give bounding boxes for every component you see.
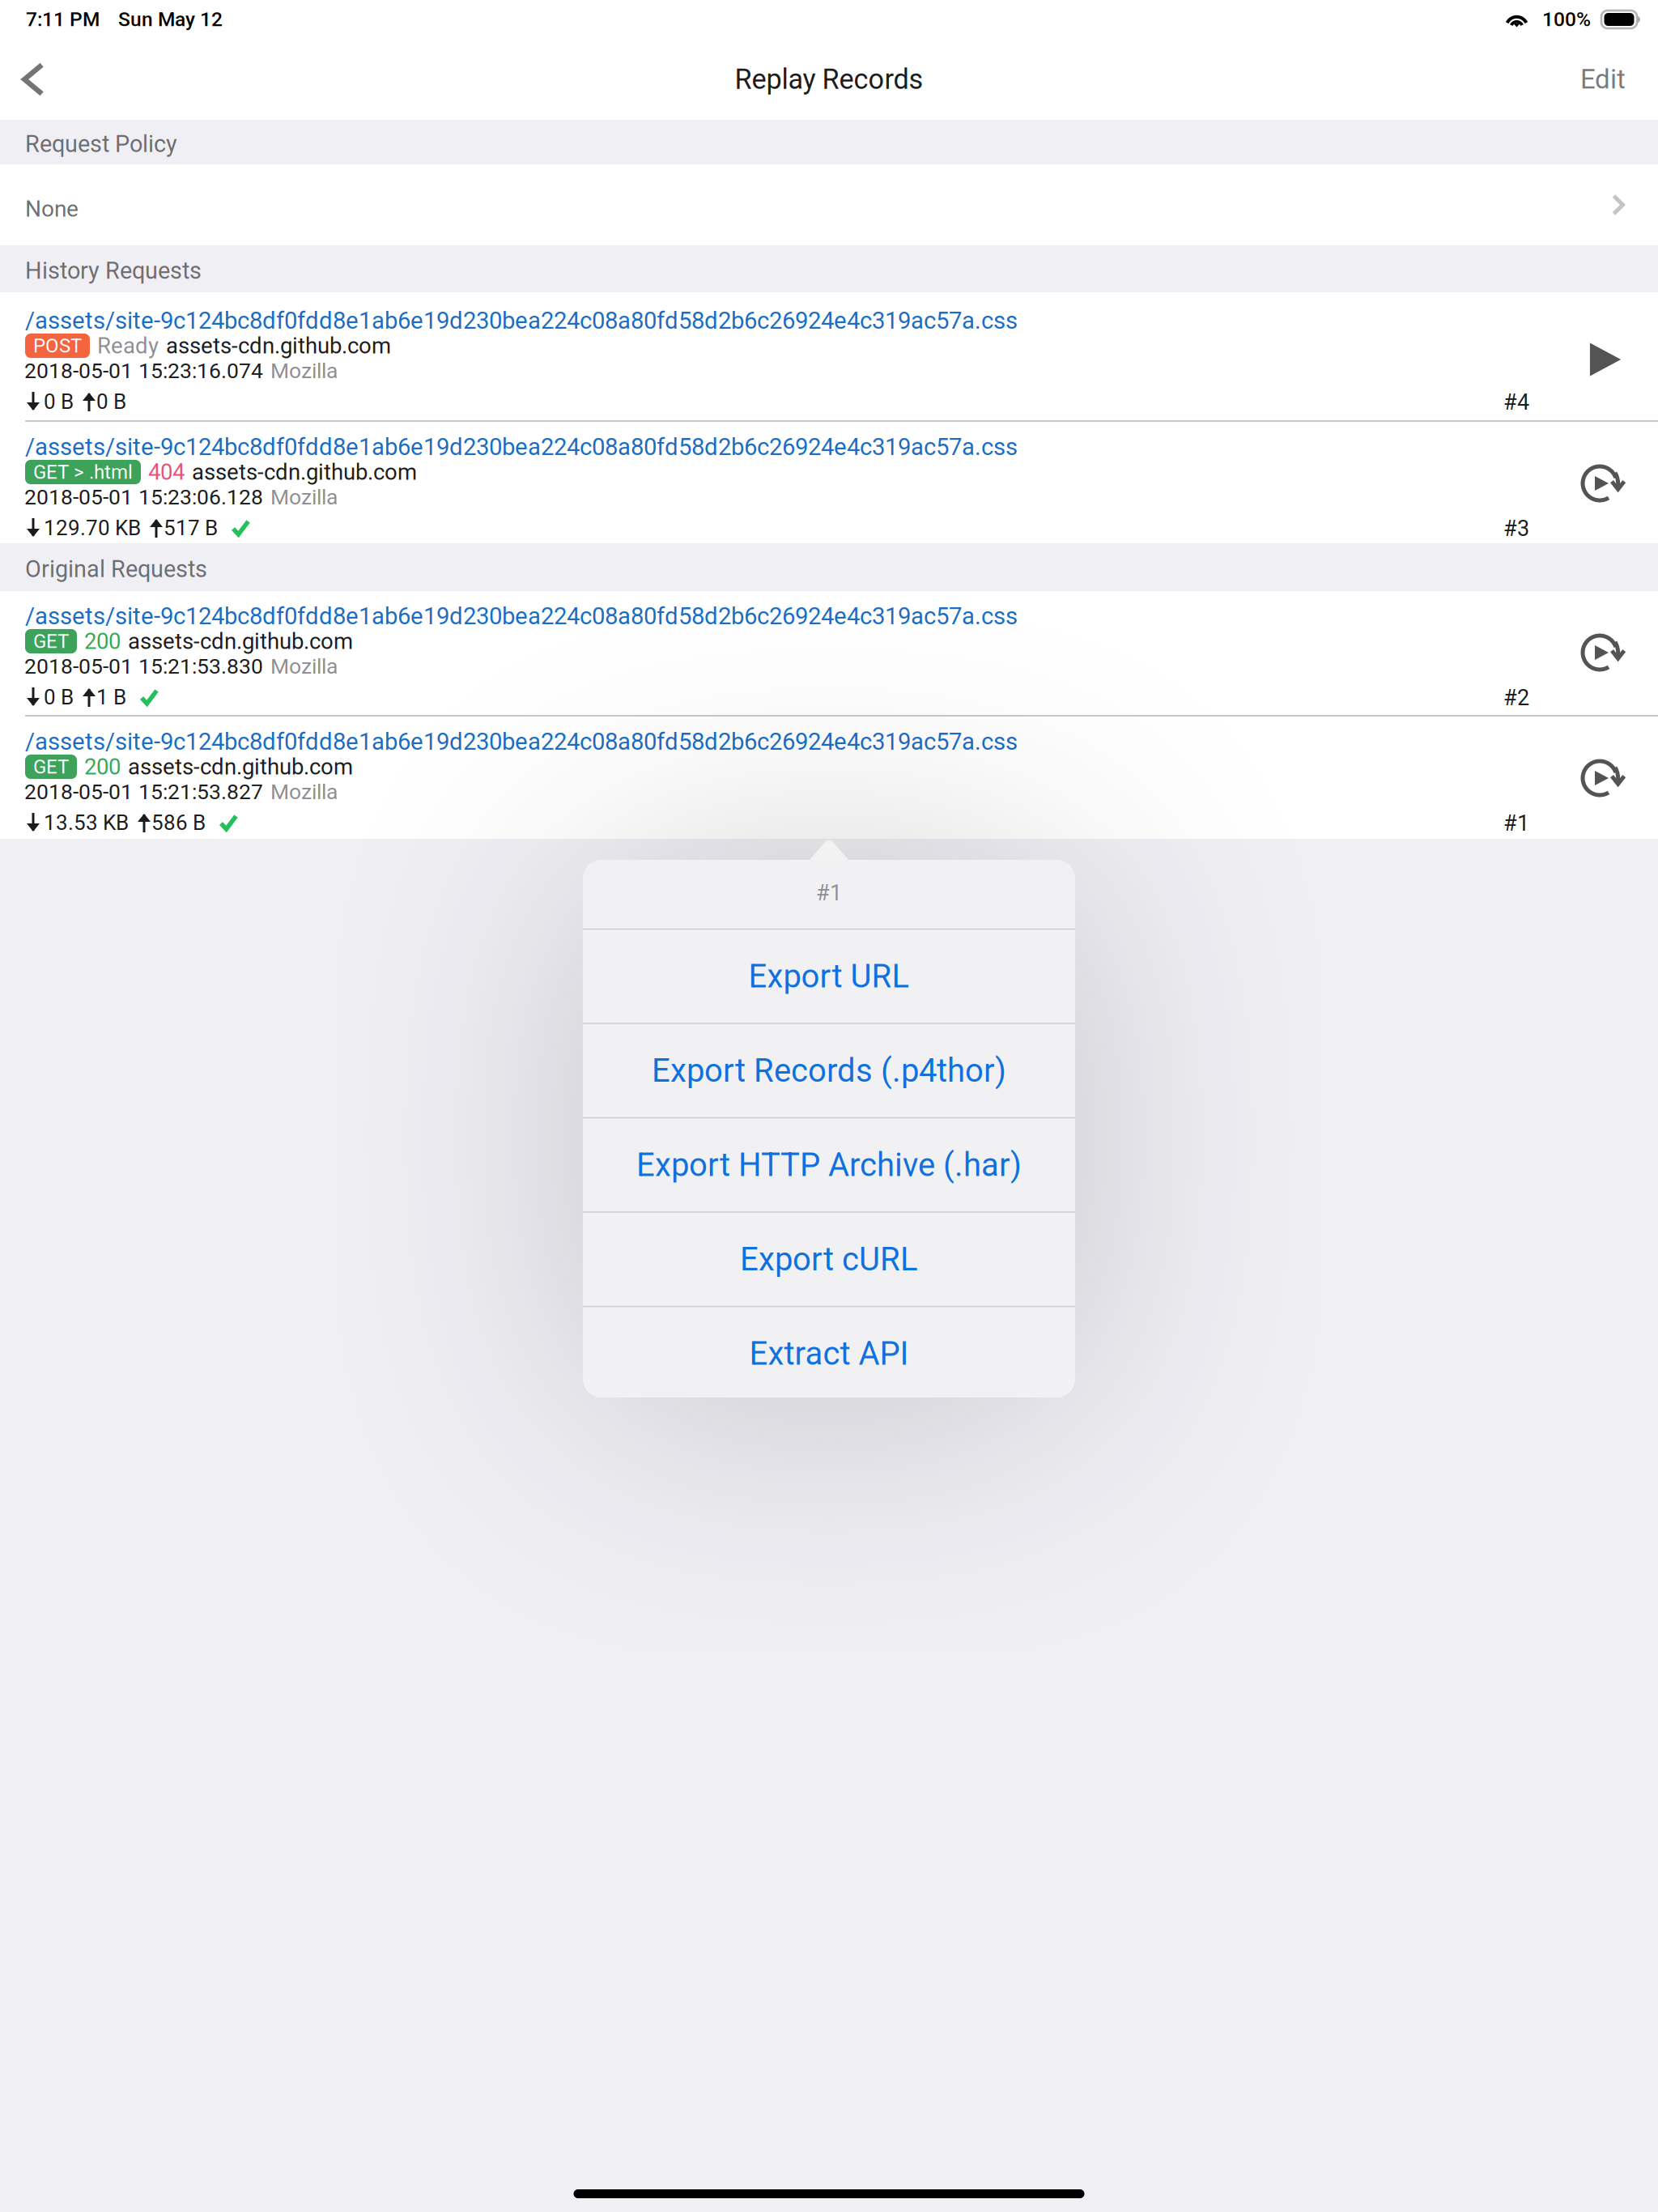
staticText: Ready	[97, 333, 159, 359]
staticText: Mozilla	[270, 779, 338, 804]
staticText: /assets/site-9c124bc8df0fdd8e1ab6e19d230…	[25, 602, 1018, 630]
staticText: Request Policy	[25, 130, 177, 158]
button[interactable]: Edit	[1567, 52, 1658, 106]
staticText: assets-cdn.github.com	[166, 333, 391, 359]
staticText: 0 B	[96, 389, 126, 414]
button[interactable]: Replay request	[1563, 627, 1647, 689]
staticText: 7:11 PM	[26, 8, 100, 31]
button[interactable]: Replay request	[1563, 329, 1647, 390]
button[interactable]: Replay request	[1563, 753, 1647, 815]
staticText: #1	[1503, 810, 1529, 836]
staticText: POST	[33, 334, 82, 357]
staticText: Mozilla	[270, 654, 338, 679]
staticText: 586 B	[151, 810, 206, 835]
staticText: /assets/site-9c124bc8df0fdd8e1ab6e19d230…	[25, 433, 1018, 461]
staticText: GET > .html	[33, 461, 133, 483]
staticText: 100%	[1542, 8, 1591, 31]
button[interactable]: Export URL	[583, 930, 1075, 1023]
staticText: 517 B	[164, 516, 218, 540]
staticText: None	[25, 196, 79, 222]
staticText: assets-cdn.github.com	[128, 754, 353, 780]
staticText: 200	[84, 754, 121, 780]
staticText: Extract API	[749, 1335, 909, 1373]
button[interactable]: Export cURL	[583, 1213, 1075, 1306]
staticText: #1	[816, 880, 842, 906]
staticText: GET	[33, 630, 69, 653]
button[interactable]: Replay request	[1563, 458, 1647, 520]
staticText: Original Requests	[25, 556, 207, 583]
staticText: 2018-05-01 15:21:53.830	[24, 654, 263, 679]
staticText: GET	[33, 755, 69, 778]
staticText: Sun May 12	[118, 8, 223, 31]
staticText: Export URL	[748, 957, 910, 995]
staticText: 129.70 KB	[44, 516, 141, 540]
staticText: Export cURL	[740, 1240, 918, 1278]
staticText: assets-cdn.github.com	[128, 628, 353, 654]
staticText: 2018-05-01 15:23:16.074	[24, 358, 263, 383]
staticText: #3	[1503, 516, 1529, 541]
staticText: 2018-05-01 15:21:53.827	[24, 779, 263, 804]
staticText: 0 B	[44, 685, 74, 710]
staticText: Mozilla	[270, 485, 338, 510]
button[interactable]: Export Records (.p4thor)	[583, 1024, 1075, 1117]
staticText: 200	[84, 628, 121, 654]
staticText: 404	[148, 459, 185, 485]
staticText: Edit	[1580, 64, 1626, 95]
staticText: Export HTTP Archive (.har)	[636, 1146, 1022, 1184]
staticText: Replay Records	[735, 63, 923, 96]
staticText: Mozilla	[270, 358, 338, 383]
staticText: /assets/site-9c124bc8df0fdd8e1ab6e19d230…	[25, 728, 1018, 755]
staticText: assets-cdn.github.com	[192, 459, 417, 485]
staticText: Export Records (.p4thor)	[652, 1052, 1006, 1090]
staticText: History Requests	[25, 257, 202, 285]
button[interactable]: Back	[0, 51, 57, 108]
staticText: 13.53 KB	[44, 810, 129, 835]
staticText: 0 B	[44, 389, 74, 414]
staticText: 2018-05-01 15:23:06.128	[24, 485, 263, 510]
button[interactable]: None	[0, 164, 1658, 245]
staticText: #2	[1503, 685, 1529, 711]
button[interactable]: Extract API	[583, 1307, 1075, 1400]
staticText: 1 B	[96, 685, 126, 710]
button[interactable]: Export HTTP Archive (.har)	[583, 1118, 1075, 1211]
staticText: #4	[1503, 389, 1529, 415]
staticText: /assets/site-9c124bc8df0fdd8e1ab6e19d230…	[25, 307, 1018, 334]
